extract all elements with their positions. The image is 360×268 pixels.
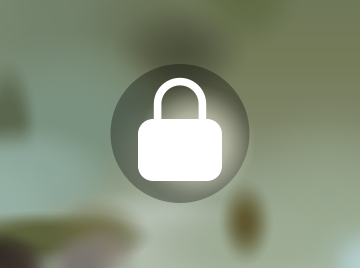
button[interactable]: Locked content xyxy=(0,0,360,268)
